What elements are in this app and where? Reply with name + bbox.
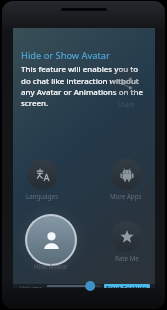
staticText: Share [118,100,135,108]
button[interactable]: Hide Avatar [27,216,75,264]
button[interactable]: Rate Me [111,221,142,252]
button[interactable]: Share [111,68,141,98]
staticText: Rate Me [115,254,139,262]
staticText: Next Feature [106,284,148,288]
staticText: Hide Avatar [34,262,68,270]
button[interactable]: Next Feature [104,284,150,288]
button[interactable]: Languages [27,159,58,190]
staticText: This feature will enables you to do chat… [21,64,147,108]
staticText: Languages [26,192,58,200]
button[interactable]: More Apps [111,159,142,190]
staticText: Hide or Show Avatar [21,49,110,62]
staticText: Volume [20,284,43,288]
staticText: More Apps [110,192,142,200]
button[interactable] [47,284,101,288]
